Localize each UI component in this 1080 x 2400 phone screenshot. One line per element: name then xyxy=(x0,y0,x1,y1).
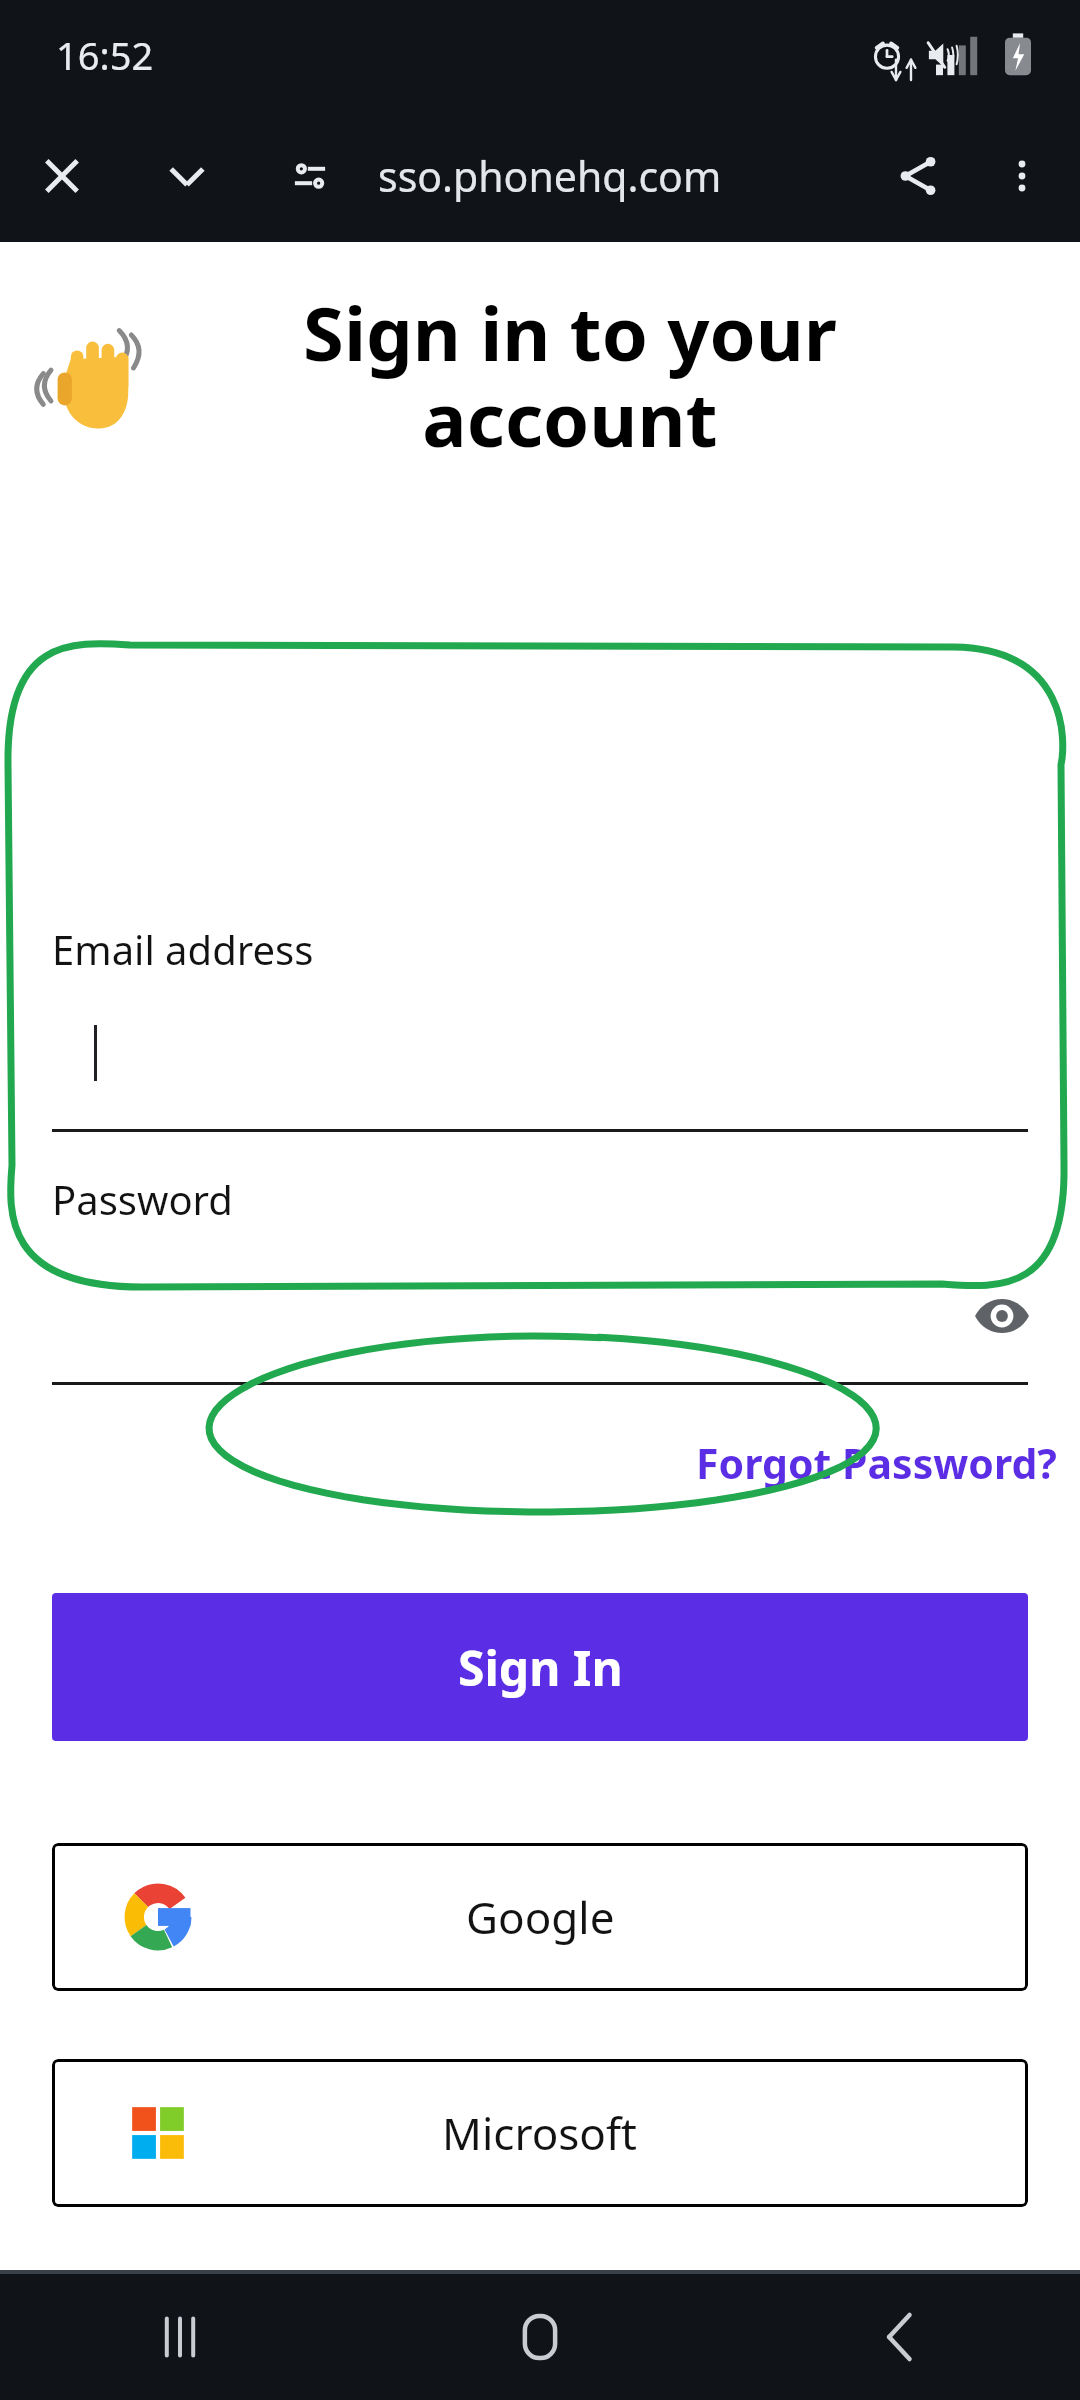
button[interactable]: Home xyxy=(360,2274,720,2400)
staticText: 16:52 xyxy=(56,29,154,81)
staticText: Microsoft xyxy=(442,2103,638,2163)
button[interactable]: Microsoft xyxy=(52,2059,1028,2207)
staticText: Sign in to your account xyxy=(250,282,890,469)
button[interactable]: Google xyxy=(52,1843,1028,1991)
button[interactable]: Site settings xyxy=(270,136,350,216)
staticText: sso.phonehq.com xyxy=(378,148,722,204)
button[interactable]: More options xyxy=(978,132,1066,220)
staticText: Apple xyxy=(481,2319,600,2379)
button[interactable]: Back xyxy=(720,2274,1080,2400)
button[interactable]: Forgot Password? xyxy=(690,1427,1063,1499)
button[interactable]: Collapse xyxy=(145,134,229,218)
button[interactable]: Apple xyxy=(52,2275,1028,2400)
button[interactable]: Share xyxy=(874,132,962,220)
button[interactable]: Recent apps xyxy=(0,2274,360,2400)
staticText: Google xyxy=(466,1887,615,1947)
staticText: Password xyxy=(52,1172,233,1226)
button[interactable]: Sign In xyxy=(52,1593,1028,1741)
staticText: Forgot Password? xyxy=(696,1435,1057,1491)
staticText: Email address xyxy=(52,922,314,976)
button[interactable]: Close xyxy=(20,134,104,218)
button[interactable]: Show password xyxy=(958,1272,1046,1360)
staticText: Sign In xyxy=(458,1635,623,1700)
